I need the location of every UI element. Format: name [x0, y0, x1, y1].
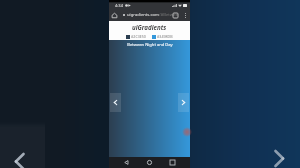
button[interactable]: Next — [266, 145, 292, 168]
button[interactable]: Home — [110, 11, 119, 20]
staticText: /#Betwee — [159, 12, 178, 18]
button[interactable]: Previous gradient — [110, 93, 121, 112]
button[interactable]: Recent apps — [167, 157, 178, 168]
staticText: uiGradients — [132, 23, 167, 31]
button[interactable]: Home — [144, 157, 155, 168]
staticText: Between Night and Day — [127, 42, 173, 48]
staticText: uigradients.com — [127, 12, 159, 18]
button[interactable]: Back — [121, 157, 132, 168]
button[interactable]: Previous — [6, 148, 32, 168]
staticText: 4:34 — [115, 3, 123, 8]
button[interactable]: More options — [181, 11, 189, 19]
button[interactable]: Next gradient — [178, 93, 189, 112]
button[interactable]: Tabs — [171, 11, 180, 20]
staticText: #2C3E50 — [131, 34, 146, 39]
staticText: #3498DB — [157, 34, 173, 39]
